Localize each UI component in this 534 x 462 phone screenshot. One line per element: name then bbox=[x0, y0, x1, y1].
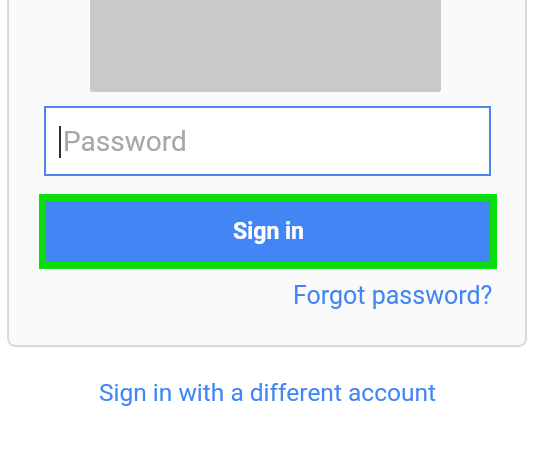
button[interactable]: Sign in bbox=[39, 194, 497, 269]
button[interactable]: Sign in with a different account bbox=[99, 378, 436, 407]
staticText: Sign in bbox=[233, 218, 304, 245]
button[interactable]: Password bbox=[44, 106, 491, 176]
staticText: Password bbox=[63, 125, 187, 158]
button[interactable]: Forgot password? bbox=[293, 281, 493, 310]
